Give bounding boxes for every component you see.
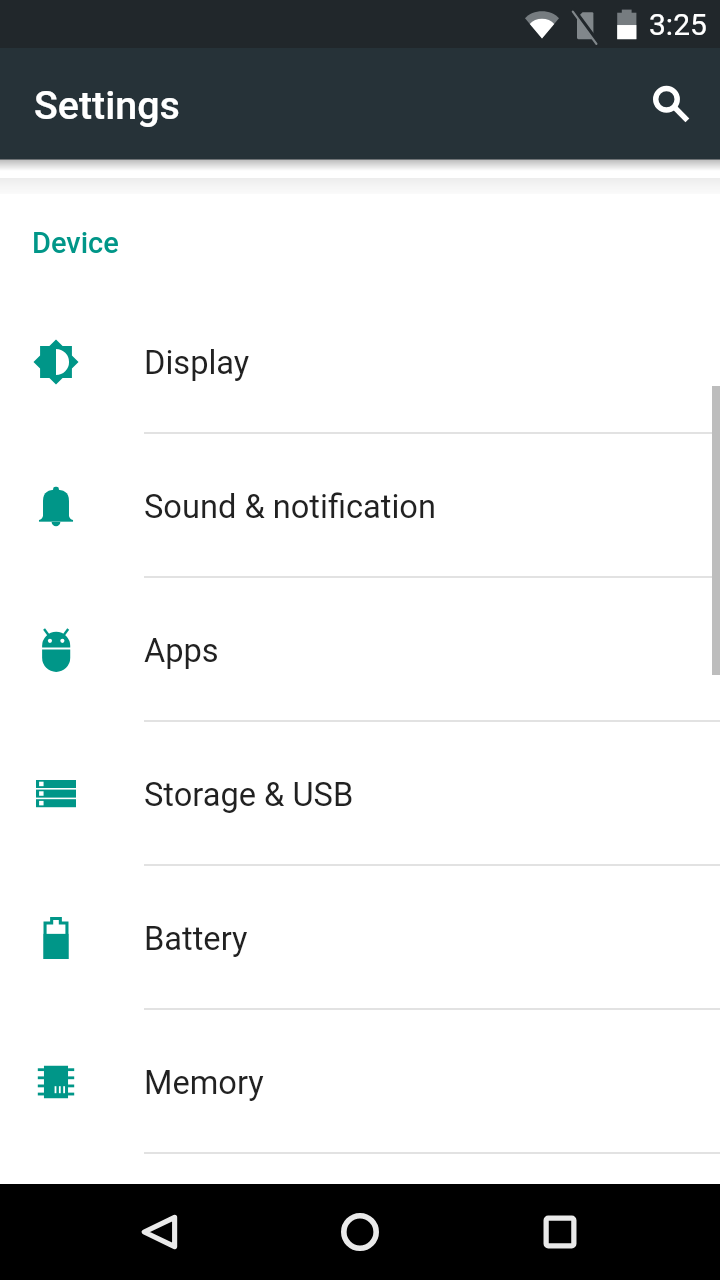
staticText: Device [32,226,119,260]
staticText: Battery [144,920,248,958]
staticText: Display [144,344,250,382]
button[interactable]: Display [0,290,720,434]
button[interactable]: Home [312,1184,408,1280]
staticText: 3:25 [649,7,707,42]
button[interactable]: Sound & notification [0,434,720,578]
button[interactable]: Battery [0,866,720,1010]
staticText: Apps [144,632,219,670]
button[interactable]: Back [112,1184,208,1280]
button[interactable]: Memory [0,1010,720,1154]
button[interactable]: Search [635,68,707,140]
staticText: Sound & notification [144,488,436,526]
button[interactable]: Apps [0,578,720,722]
button[interactable]: Recents [512,1184,608,1280]
button[interactable]: Storage & USB [0,722,720,866]
staticText: Memory [144,1064,264,1102]
staticText: Storage & USB [144,776,354,814]
staticText: Settings [34,82,180,128]
